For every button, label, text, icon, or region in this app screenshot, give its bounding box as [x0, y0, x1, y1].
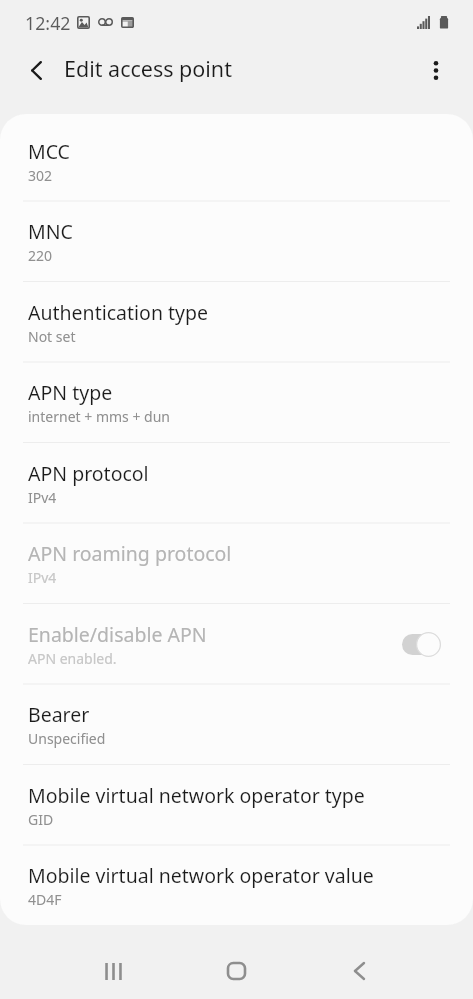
staticText: MCC — [28, 138, 70, 165]
staticText: 220 — [28, 246, 53, 265]
staticText: APN enabled. — [28, 649, 117, 668]
staticText: Unspecified — [28, 729, 106, 748]
button[interactable]: Mobile virtual network operator value — [0, 845, 473, 925]
button[interactable]: APN roaming protocol — [0, 523, 473, 603]
button[interactable]: APN type — [0, 362, 473, 442]
button[interactable]: Recent apps — [73, 946, 153, 996]
button[interactable]: Back — [319, 946, 399, 996]
staticText: 12:42 — [25, 11, 71, 35]
button[interactable]: Authentication type — [0, 282, 473, 362]
staticText: Enable/disable APN — [28, 621, 207, 648]
staticText: 4D4F — [28, 890, 62, 909]
button[interactable]: Enable/disable APN — [0, 604, 473, 684]
staticText: GID — [28, 810, 54, 829]
button[interactable]: Bearer — [0, 684, 473, 764]
button[interactable]: More options — [412, 46, 460, 94]
staticText: internet + mms + dun — [28, 407, 170, 426]
staticText: APN protocol — [28, 460, 149, 487]
staticText: Authentication type — [28, 299, 208, 326]
button[interactable]: MNC — [0, 201, 473, 281]
button[interactable]: APN protocol — [0, 443, 473, 523]
button[interactable]: MCC — [0, 121, 473, 201]
button[interactable]: Navigate up — [12, 46, 60, 94]
staticText: APN type — [28, 379, 113, 406]
staticText: APN roaming protocol — [28, 540, 232, 567]
staticText: IPv4 — [28, 488, 57, 507]
staticText: Edit access point — [64, 54, 232, 83]
button[interactable]: Mobile virtual network operator type — [0, 765, 473, 845]
staticText: 302 — [28, 166, 53, 185]
staticText: MNC — [28, 218, 73, 245]
staticText: Not set — [28, 327, 76, 346]
staticText: Mobile virtual network operator value — [28, 862, 374, 889]
staticText: IPv4 — [28, 568, 57, 587]
staticText: Bearer — [28, 701, 90, 728]
button[interactable]: Home — [196, 946, 276, 996]
staticText: Mobile virtual network operator type — [28, 782, 365, 809]
